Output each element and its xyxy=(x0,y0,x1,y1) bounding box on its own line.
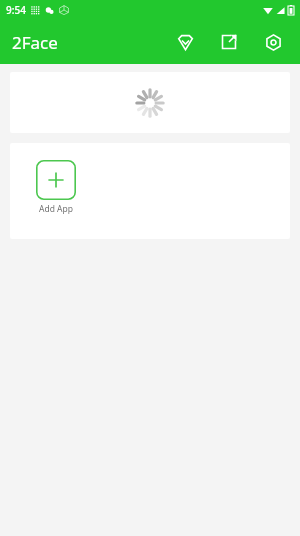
staticText: 9:54 xyxy=(6,3,26,17)
staticText: 2Face xyxy=(12,31,58,54)
button[interactable]: Settings xyxy=(254,23,292,61)
staticText: Add App xyxy=(39,203,73,215)
button[interactable]: Add App xyxy=(36,160,76,215)
button[interactable]: Share xyxy=(210,23,248,61)
button[interactable]: Verify xyxy=(166,23,204,61)
